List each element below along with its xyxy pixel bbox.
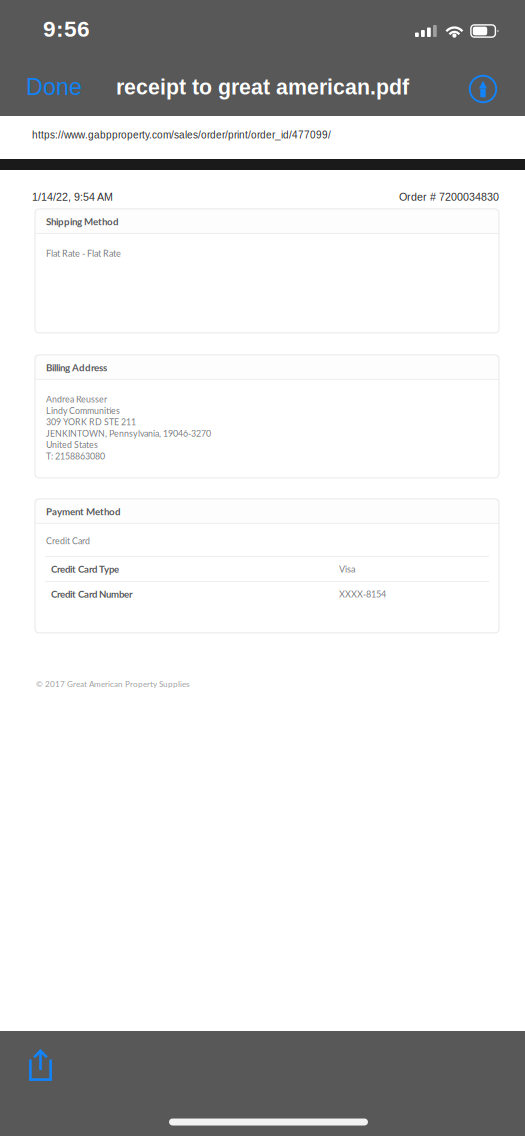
staticText: https://www.gabpproperty.com/sales/order…	[32, 129, 331, 141]
staticText: JENKINTOWN, Pennsylvania, 19046-3270	[46, 428, 211, 439]
staticText: Visa	[339, 563, 356, 574]
staticText: © 2017 Great American Property Supplies	[36, 679, 190, 689]
staticText: Credit Card	[46, 536, 90, 546]
staticText: Credit Card Number	[51, 588, 133, 600]
staticText: receipt to great american.pdf	[116, 75, 409, 99]
staticText: United States	[46, 439, 98, 450]
staticText: Credit Card Type	[51, 563, 119, 575]
button[interactable]: Share	[19, 1041, 62, 1089]
button[interactable]: Done	[16, 65, 92, 109]
staticText: 9:56	[43, 16, 90, 42]
staticText: Billing Address	[46, 362, 107, 373]
staticText: Order # 7200034830	[399, 191, 499, 203]
staticText: Andrea Reusser	[46, 394, 107, 404]
staticText: 309 YORK RD STE 211	[46, 417, 136, 427]
staticText: 1/14/22, 9:54 AM	[32, 191, 113, 203]
staticText: Flat Rate - Flat Rate	[46, 248, 121, 259]
staticText: XXXX-8154	[339, 588, 386, 599]
staticText: Done	[26, 74, 82, 100]
staticText: Lindy Communities	[46, 405, 120, 416]
staticText: Shipping Method	[46, 216, 119, 227]
staticText: T: 2158863080	[46, 451, 105, 461]
button[interactable]: Markup	[462, 68, 504, 110]
staticText: Payment Method	[46, 506, 121, 517]
